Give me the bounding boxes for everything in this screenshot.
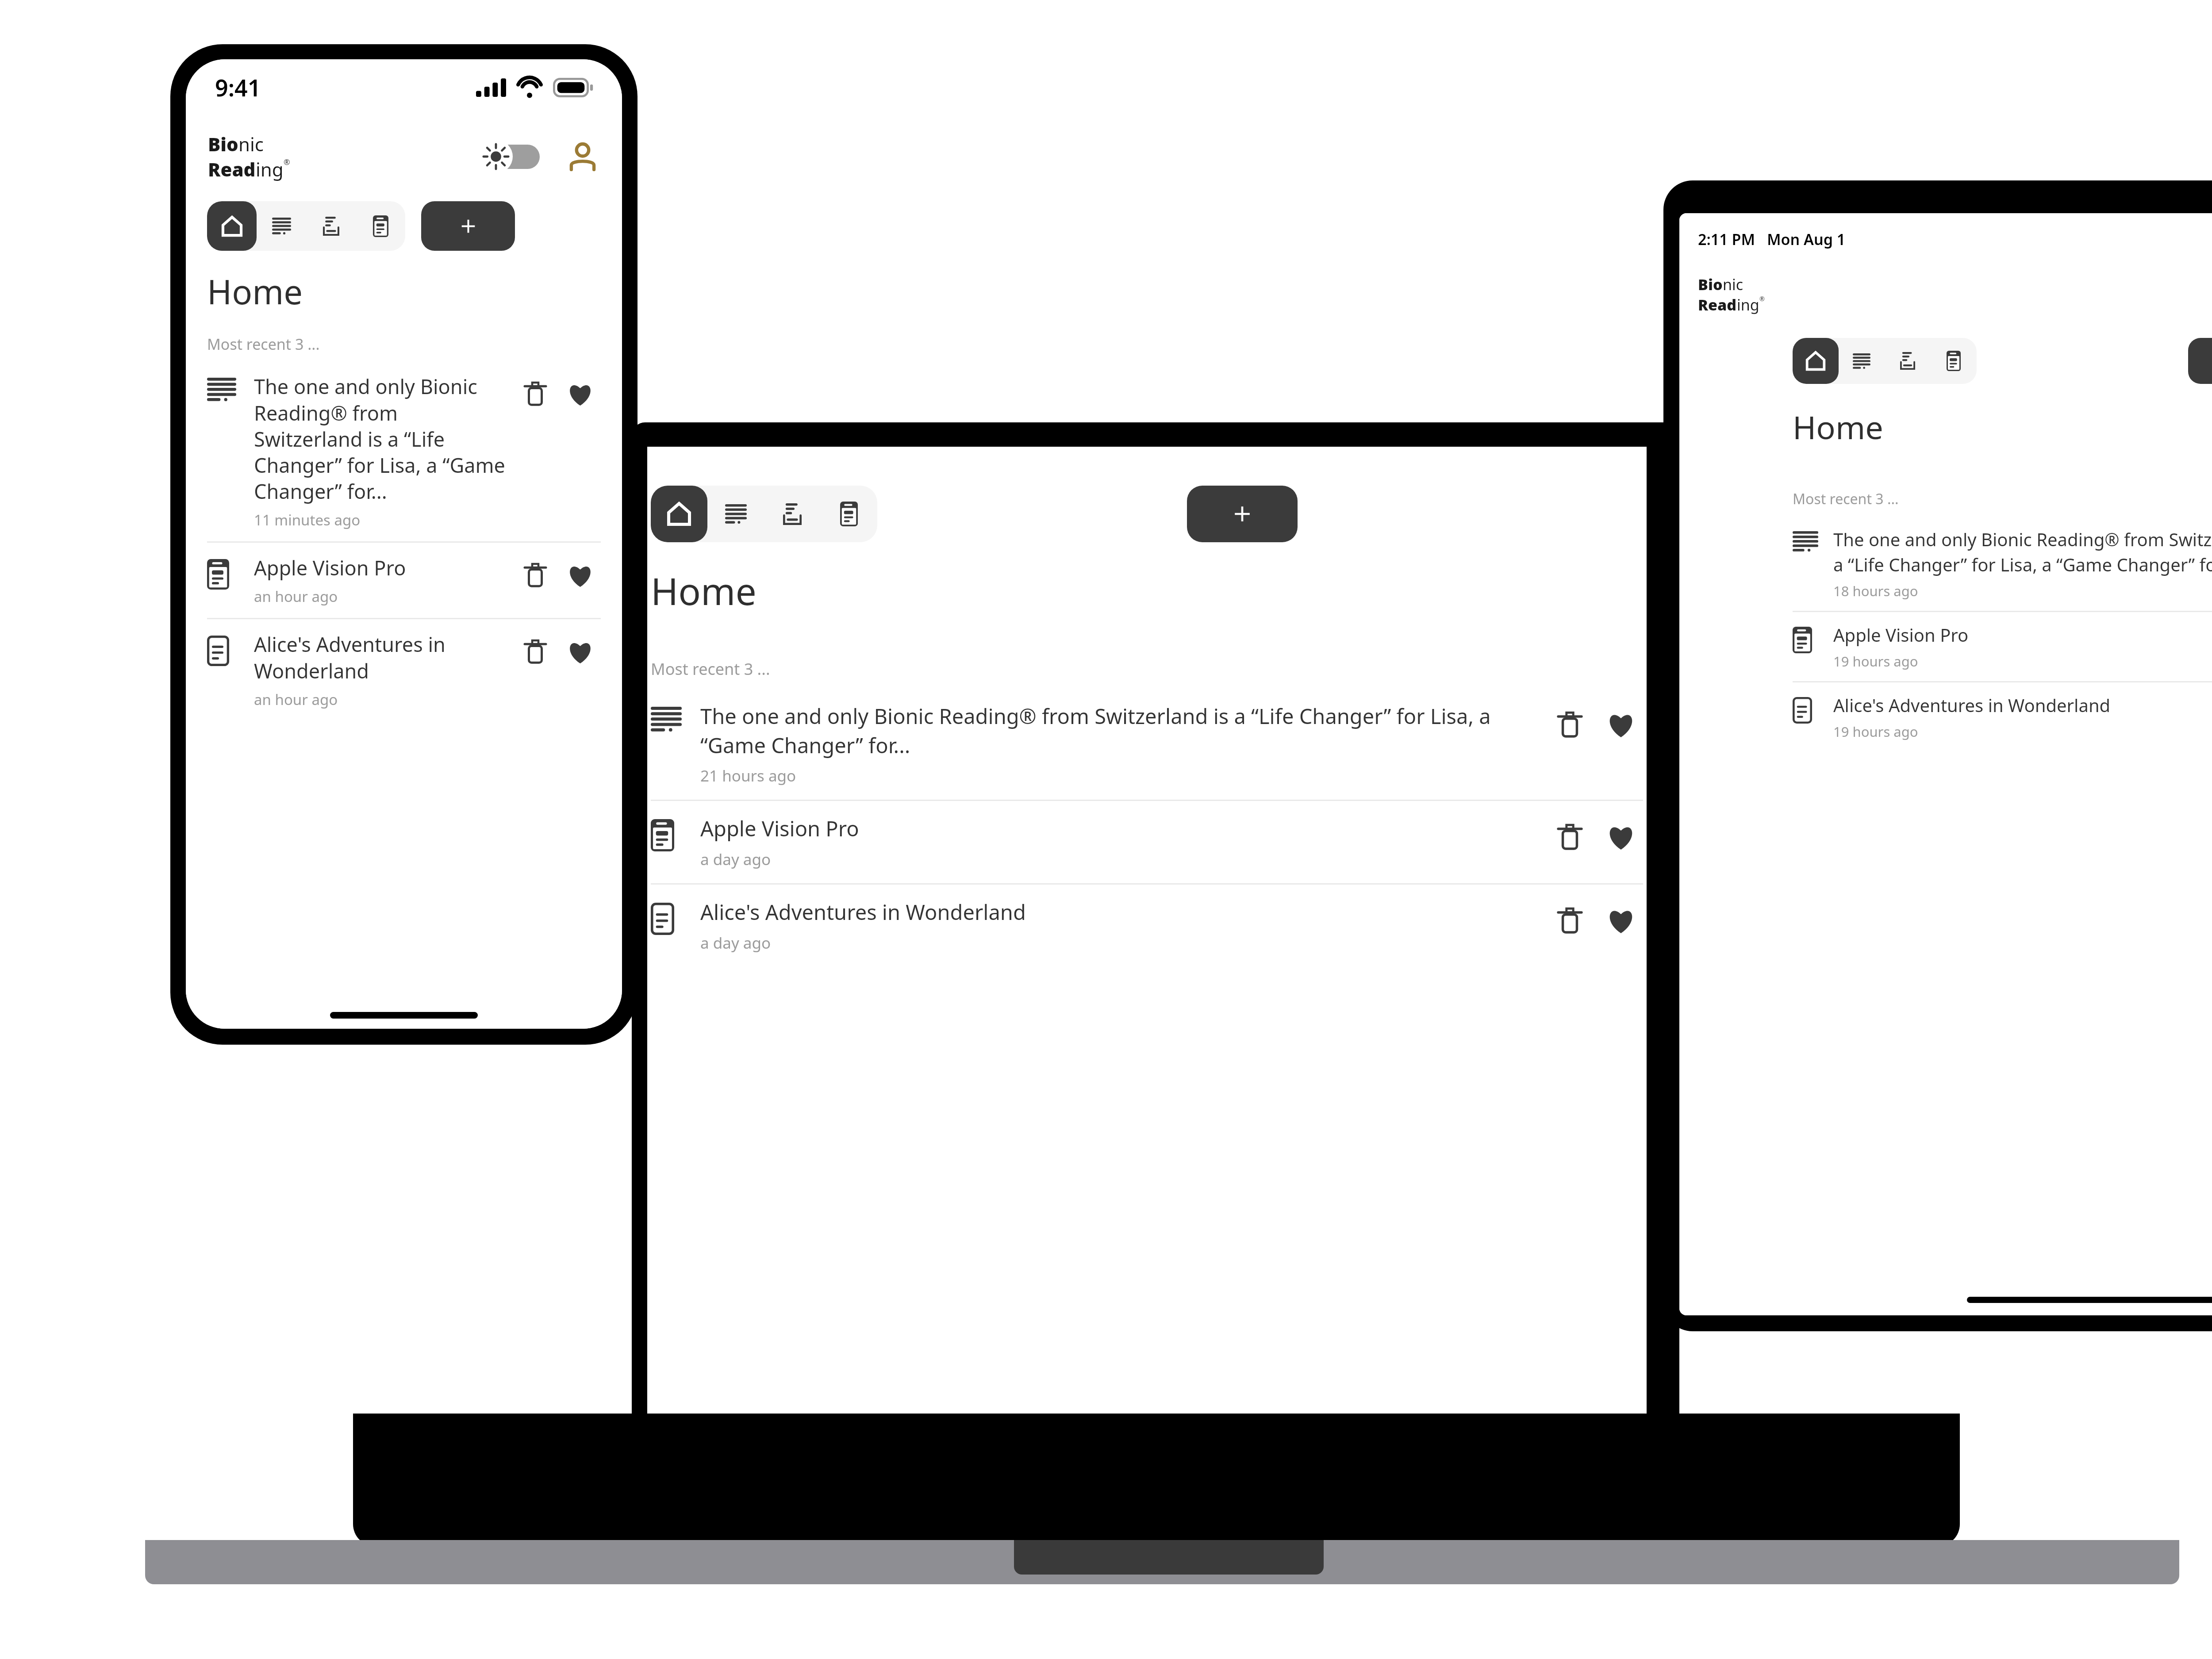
button[interactable]: Add [421, 201, 515, 251]
staticText: nic [1723, 274, 1743, 295]
staticText: Bio [208, 131, 238, 157]
staticText: ® [1759, 295, 1765, 303]
staticText: Alice's Adventures in Wonderland [700, 898, 1026, 926]
staticText: Alice's Adventures in Wonderland [254, 631, 507, 684]
staticText: ing [1737, 295, 1759, 315]
button[interactable]: Library [356, 201, 405, 251]
staticText: Read [208, 157, 256, 182]
staticText: 21 hours ago [700, 765, 796, 786]
button[interactable]: Favourite [1598, 814, 1643, 859]
button[interactable]: Reading mode [257, 201, 306, 251]
button[interactable]: Alice's Adventures in Wonderland [207, 619, 601, 721]
staticText: Home [651, 565, 757, 616]
button[interactable]: Apple Vision Pro [651, 801, 1643, 883]
button[interactable]: Favourite [559, 554, 601, 596]
button[interactable]: Home [651, 486, 707, 542]
staticText: ® [284, 157, 290, 167]
staticText: nic [238, 131, 264, 157]
button[interactable]: The one and only Bionic Reading® from Sw… [651, 689, 1643, 800]
staticText: 2:11 PM [1698, 229, 1755, 249]
staticText: Apple Vision Pro [254, 554, 406, 581]
button[interactable]: Reading mode [707, 486, 764, 542]
staticText: 19 hours ago [1833, 652, 1918, 670]
button[interactable]: Favourite [1598, 898, 1643, 943]
button[interactable]: Library [1931, 338, 1977, 384]
staticText: a day ago [700, 849, 771, 870]
button[interactable]: Apple Vision Pro [1793, 612, 2212, 681]
button[interactable]: Home [207, 201, 257, 251]
staticText: Mon Aug 1 [1767, 229, 1846, 249]
button[interactable]: Favourite [559, 373, 601, 414]
button[interactable]: Delete [1548, 898, 1592, 943]
button[interactable]: Account [565, 139, 600, 174]
button[interactable]: Favourite [1598, 702, 1643, 747]
button[interactable]: The one and only Bionic Reading® from Sw… [207, 361, 601, 541]
button[interactable]: Focus mode [764, 486, 821, 542]
button[interactable]: Toggle theme [479, 140, 540, 173]
staticText: The one and only Bionic Reading® from Sw… [700, 702, 1534, 759]
staticText: Bio [1698, 274, 1723, 295]
staticText: 18 hours ago [1833, 582, 1918, 600]
button[interactable]: Delete [515, 554, 556, 596]
staticText: Home [207, 268, 303, 314]
staticText: Read [1698, 295, 1737, 315]
button[interactable]: Home [1793, 338, 1839, 384]
button[interactable]: Add [2188, 338, 2212, 384]
button[interactable]: Favourite [559, 631, 601, 672]
staticText: a day ago [700, 932, 771, 954]
staticText: 11 minutes ago [254, 510, 361, 530]
staticText: Most recent 3 ... [1793, 489, 1899, 509]
staticText: The one and only Bionic Reading® from Sw… [1833, 527, 2212, 576]
staticText: ing [256, 157, 284, 182]
button[interactable]: Add [1187, 486, 1298, 542]
button[interactable]: Alice's Adventures in Wonderland [651, 885, 1643, 967]
staticText: 9:41 [215, 72, 261, 103]
staticText: Most recent 3 ... [651, 658, 770, 680]
button[interactable]: Focus mode [306, 201, 356, 251]
button[interactable]: Library [821, 486, 877, 542]
button[interactable]: Focus mode [1885, 338, 1931, 384]
staticText: Apple Vision Pro [700, 814, 859, 843]
staticText: Apple Vision Pro [1833, 623, 1969, 647]
staticText: Alice's Adventures in Wonderland [1833, 693, 2111, 717]
button[interactable]: Delete [1548, 814, 1592, 859]
button[interactable]: The one and only Bionic Reading® from Sw… [1793, 517, 2212, 611]
staticText: an hour ago [254, 690, 338, 709]
button[interactable]: Delete [515, 631, 556, 672]
button[interactable]: Delete [515, 373, 556, 414]
button[interactable]: Apple Vision Pro [207, 543, 601, 618]
button[interactable]: Reading mode [1839, 338, 1885, 384]
button[interactable]: Alice's Adventures in Wonderland [1793, 682, 2212, 751]
staticText: Home [1793, 405, 1883, 448]
staticText: 19 hours ago [1833, 722, 1918, 741]
staticText: The one and only Bionic Reading® from Sw… [254, 373, 507, 505]
button[interactable]: Delete [1548, 702, 1592, 747]
staticText: Most recent 3 ... [207, 334, 320, 354]
staticText: an hour ago [254, 586, 338, 606]
